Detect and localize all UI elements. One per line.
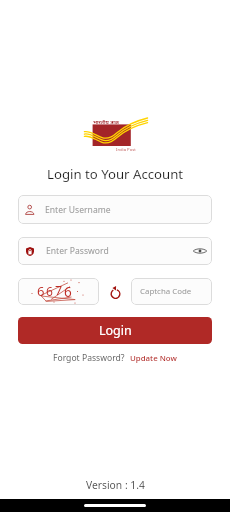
button[interactable]: Enter Username bbox=[18, 195, 212, 224]
staticText: Login to Your Account bbox=[47, 165, 184, 183]
staticText: 6 bbox=[37, 282, 45, 300]
staticText: Version : 1.4 bbox=[86, 478, 145, 492]
staticText: Captcha Code bbox=[140, 286, 192, 297]
staticText: 7 bbox=[55, 282, 63, 299]
staticText: Enter Username bbox=[45, 204, 111, 216]
staticText: Forgot Password? bbox=[53, 352, 125, 364]
staticText: 6 bbox=[64, 283, 72, 301]
button[interactable]: Show password bbox=[190, 241, 210, 261]
button[interactable]: Captcha Code bbox=[131, 278, 212, 305]
button[interactable]: Enter Password bbox=[18, 237, 212, 265]
staticText: Update Now bbox=[130, 353, 177, 364]
staticText: Login bbox=[99, 322, 132, 339]
button[interactable]: Login bbox=[18, 317, 212, 344]
button[interactable]: Update Now bbox=[130, 353, 177, 364]
staticText: भारतीय डाक bbox=[93, 118, 120, 125]
button[interactable]: 6 bbox=[18, 278, 99, 305]
staticText: India Post bbox=[116, 147, 136, 153]
button[interactable]: Refresh captcha bbox=[106, 283, 124, 301]
staticText: 6 bbox=[46, 283, 53, 299]
staticText: Enter Password bbox=[46, 245, 109, 257]
